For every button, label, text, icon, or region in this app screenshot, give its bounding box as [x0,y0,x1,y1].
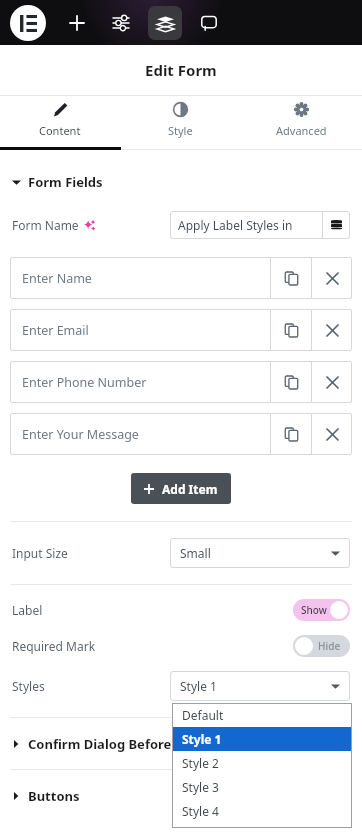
button[interactable]: Style 3 [172,775,352,799]
staticText: Required Mark [12,638,96,654]
button[interactable]: Style 2 [172,751,352,775]
button[interactable]: Content [0,96,120,150]
staticText: Advanced [276,123,327,138]
staticText: Enter Email [22,322,89,339]
button[interactable]: Add Item [131,473,231,504]
button[interactable]: Dynamic tags [323,212,350,239]
button[interactable]: Enter Phone Number [10,361,352,403]
button[interactable]: Style 4 [172,799,352,823]
button[interactable]: Duplicate field [271,362,311,402]
button[interactable]: Duplicate field [271,258,311,298]
button[interactable]: Style [120,96,241,150]
button[interactable]: Enter Name [10,257,352,299]
staticText: Label [12,602,43,618]
staticText: Enter Name [22,270,92,287]
staticText: Styles [12,678,45,694]
button[interactable]: Remove field [312,310,352,350]
button[interactable]: Feedback [192,6,226,40]
staticText: Show [301,603,327,617]
staticText: Apply Label Styles in Form [178,217,322,233]
button[interactable]: Style 1 [170,671,350,701]
button[interactable]: Style 1 [172,727,352,751]
button[interactable]: Form Fields [0,169,362,195]
button[interactable]: Show [293,599,350,621]
staticText: Form Name [12,217,79,233]
button[interactable]: Remove field [312,362,352,402]
staticText: Enter Your Message [22,426,139,443]
button[interactable]: Enter Your Message [10,413,352,455]
staticText: Style 4 [182,803,219,819]
button[interactable]: Confirm Dialog Before Submit [0,732,362,756]
staticText: Add Item [162,481,218,497]
staticText: Buttons [28,787,80,805]
staticText: Edit Form [145,60,217,80]
staticText: Input Size [12,545,68,561]
staticText: Style 3 [182,779,219,795]
button[interactable]: Add element [60,6,94,40]
staticText: Style 2 [182,755,219,771]
button[interactable]: Remove field [312,258,352,298]
button[interactable]: Remove field [312,414,352,454]
button[interactable]: Duplicate field [271,310,311,350]
staticText: Default [182,707,224,723]
button[interactable]: Duplicate field [271,414,311,454]
button[interactable]: Buttons [0,784,362,808]
staticText: Confirm Dialog Before Submit [28,735,221,753]
button[interactable]: Hide [293,635,350,657]
button[interactable]: Advanced [241,96,362,150]
button[interactable]: Default [172,703,352,727]
button[interactable]: Navigator [148,6,182,40]
staticText: Hide [318,639,341,653]
staticText: Style 1 [180,678,217,694]
button[interactable]: Elementor menu [10,5,46,41]
button[interactable]: Site settings [104,6,138,40]
button[interactable]: Apply Label Styles in Form [170,211,350,239]
staticText: Enter Phone Number [22,374,147,391]
staticText: Style 1 [182,731,222,747]
staticText: Style [168,123,193,138]
button[interactable]: Enter Email [10,309,352,351]
button[interactable]: Small [170,538,350,568]
staticText: Small [180,545,211,561]
staticText: Form Fields [28,173,103,191]
staticText: Content [39,123,81,138]
